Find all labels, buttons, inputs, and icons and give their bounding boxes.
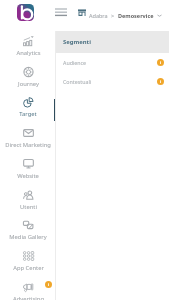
staticText: > <box>111 12 115 19</box>
staticText: Contestuali <box>63 78 92 85</box>
button[interactable]: Utenti <box>0 188 56 219</box>
staticText: Website <box>17 172 39 180</box>
staticText: Demoservice <box>118 12 154 19</box>
staticText: i <box>160 60 162 65</box>
button[interactable]: Analytics <box>0 34 56 65</box>
staticText: i <box>160 79 162 84</box>
staticText: Advertising <box>13 295 44 300</box>
staticText: Adabra <box>89 12 108 19</box>
staticText: Audience <box>63 59 87 66</box>
button[interactable]: Direct Marketing <box>0 126 56 157</box>
staticText: Segmenti <box>63 38 91 46</box>
button[interactable]: Target <box>0 95 56 126</box>
button[interactable]: Website <box>0 157 56 188</box>
button[interactable]: Adabra logo <box>17 4 34 21</box>
staticText: Journey <box>18 80 39 88</box>
button[interactable]: Contestuali <box>56 72 169 91</box>
button[interactable]: App Center <box>0 249 56 280</box>
button[interactable]: Audience <box>56 53 169 72</box>
button[interactable]: Journey <box>0 65 56 96</box>
button[interactable]: Media Gallery <box>0 218 56 249</box>
staticText: i <box>48 282 50 287</box>
staticText: Target <box>19 110 37 118</box>
staticText: Utenti <box>20 203 37 211</box>
staticText: Media Gallery <box>9 233 47 241</box>
button[interactable]: Advertising <box>0 280 56 300</box>
staticText: App Center <box>13 264 44 272</box>
staticText: Analytics <box>16 49 41 57</box>
staticText: Direct Marketing <box>5 141 51 149</box>
button[interactable]: Menu <box>55 7 67 18</box>
